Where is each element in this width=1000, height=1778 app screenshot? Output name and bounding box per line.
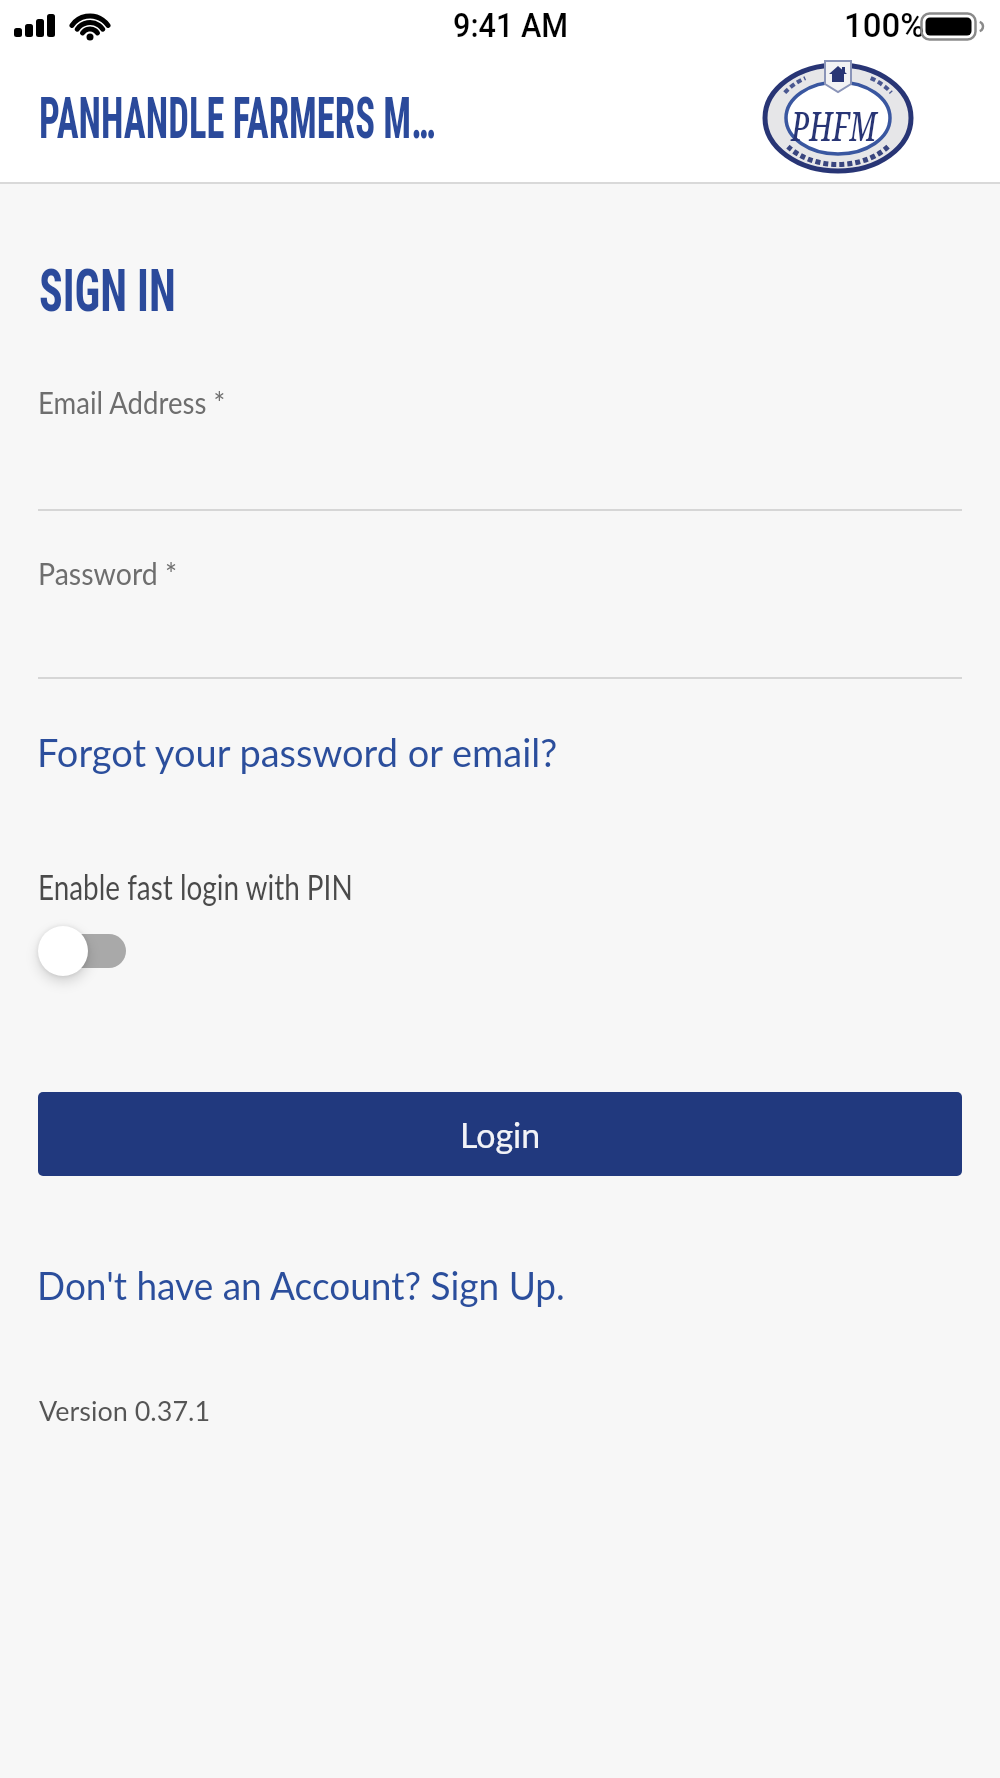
staticText: Version 0.37.1 (39, 1394, 211, 1426)
button[interactable]: PHFM (764, 60, 914, 172)
button[interactable]: Don't have an Account? Sign Up. (37, 1262, 594, 1309)
button[interactable] (36, 924, 128, 978)
staticText: 9:41 AM (453, 5, 568, 45)
staticText: PHFM (791, 98, 877, 152)
staticText: Enable fast login with PIN (38, 866, 353, 907)
staticText: Email Address * (38, 383, 226, 420)
staticText: 100% (844, 5, 924, 45)
staticText: Login (460, 1114, 541, 1155)
staticText: SIGN IN (39, 255, 176, 325)
button[interactable]: Login (38, 1092, 962, 1176)
button[interactable]: Forgot your password or email? (37, 729, 558, 775)
staticText: Password * (38, 554, 178, 591)
staticText: PANHANDLE FARMERS M… (39, 85, 436, 152)
